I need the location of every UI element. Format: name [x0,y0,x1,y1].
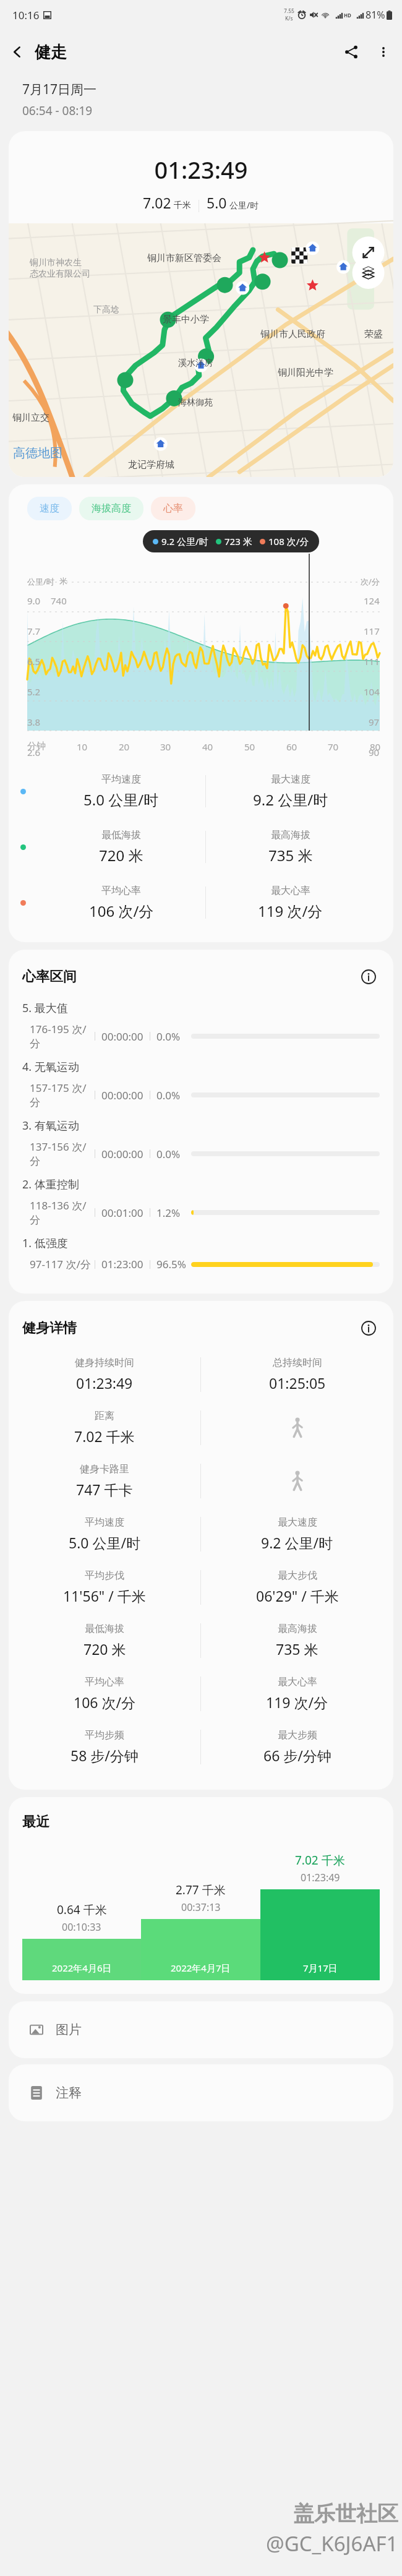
staticText: 平均步伐 [85,1569,124,1582]
staticText: 2. 体重控制 [22,1177,79,1192]
staticText: 0.0% [156,1088,189,1102]
button[interactable]: 7.02 千米 [260,1844,380,1980]
staticText: 铜川立交 [12,412,49,424]
staticText: 6.5 [27,655,41,668]
button[interactable]: 2.77 千米 [141,1844,260,1980]
staticText: 740 [51,595,67,607]
staticText: 2.6 [27,746,41,758]
staticText: 111 [364,655,380,668]
staticText: 健走 [35,42,67,62]
staticText: 总持续时间 [273,1357,322,1369]
button[interactable]: 图片 [9,2001,393,2058]
staticText: 735 米 [276,1639,319,1659]
staticText: 7.02 千米 [295,1852,345,1868]
staticText: 最近 [22,1813,49,1831]
staticText: 最大心率 [271,885,310,897]
staticText: 海拔高度 [92,502,131,515]
staticText: 最高海拔 [278,1623,317,1635]
staticText: 平均速度 [85,1516,124,1529]
staticText: 7月17日 [303,1962,338,1974]
staticText: 00:00:00 [101,1088,150,1102]
staticText: 平均步频 [85,1729,124,1741]
staticText: 0.0% [156,1147,189,1161]
staticText: 最大心率 [278,1676,317,1688]
staticText: 图片 [56,2022,82,2038]
staticText: 90 [369,746,380,758]
staticText: 高德地图 [13,445,62,461]
staticText: 137-156 次/分 [30,1140,95,1168]
staticText: 距离 [95,1410,114,1422]
staticText: 106 次/分 [74,1693,136,1712]
staticText: 735 米 [268,845,313,865]
staticText: 2022年4月7日 [171,1962,231,1974]
staticText: 平均速度 [101,773,141,786]
staticText: 0.0% [156,1029,189,1044]
staticText: 80 [370,741,381,753]
button[interactable]: Information about 健身详情 [357,1317,380,1339]
staticText: 97 [369,716,380,728]
staticText: 00:37:13 [181,1900,221,1914]
button[interactable]: Back [0,35,35,69]
button[interactable]: 海拔高度 [79,497,143,520]
staticText: 1.2% [156,1206,189,1220]
staticText: 01:23:49 [9,153,393,186]
staticText: 次/分 [361,576,380,587]
staticText: 健身持续时间 [75,1357,134,1369]
staticText: 106 次/分 [89,901,154,921]
staticText: 119 次/分 [258,901,323,921]
staticText: 铜川阳光中学 [278,367,333,379]
staticText: 0.64 千米 [57,1902,107,1918]
staticText: 58 步/分钟 [71,1746,139,1765]
staticText: 9.2 公里/时 [253,789,328,810]
staticText: 9.0 [27,595,41,607]
staticText: 01:25:05 [269,1373,326,1393]
staticText: 溪水洋房 [178,358,213,369]
staticText: 最低海拔 [101,829,141,841]
button[interactable]: 速度 [27,497,72,520]
staticText: 铜川市神农生 态农业有限公司 [30,257,90,279]
staticText: 平均心率 [101,885,141,897]
staticText: 盖乐世社区 [293,2501,398,2527]
button[interactable]: More options [367,36,400,68]
staticText: 最大步频 [278,1729,317,1741]
staticText: 01:23:49 [301,1871,340,1884]
staticText: 7.55 [284,7,294,15]
staticText: 最高海拔 [271,829,310,841]
staticText: 00:00:00 [101,1147,150,1161]
button[interactable]: 0.64 千米 [22,1844,141,1980]
staticText: 50 [244,741,255,753]
staticText: 米 [59,576,67,586]
staticText: 117 [364,625,380,637]
staticText: 747 千卡 [76,1480,133,1499]
staticText: 720 米 [99,845,143,865]
staticText: 118-136 次/分 [30,1198,95,1227]
button[interactable]: Information about 心率区间 [357,966,380,988]
staticText: 40 [202,741,213,753]
staticText: 60 [286,741,297,753]
button[interactable]: Share [335,36,367,68]
staticText: 3. 有氧运动 [22,1118,79,1133]
staticText: 最大步伐 [278,1569,317,1582]
staticText: 速度 [40,502,59,515]
staticText: 108 次/分 [268,535,309,547]
staticText: 5.0 公里/时 [69,1533,141,1552]
button[interactable]: 心率 [151,497,195,520]
staticText: 最大速度 [271,773,310,786]
staticText: 景丰中小学 [163,314,209,325]
staticText: 公里/时 [27,576,54,587]
staticText: 海林御苑 [178,397,213,408]
staticText: 06'29" / 千米 [256,1586,339,1605]
staticText: 最大速度 [278,1516,317,1529]
staticText: 千米 [174,200,191,211]
button[interactable]: 注释 [9,2064,393,2121]
staticText: 5.0 [207,193,227,212]
staticText: 723 米 [225,535,252,547]
staticText: 124 [364,595,380,607]
staticText: 01:23:00 [101,1257,150,1271]
staticText: 4. 无氧运动 [22,1059,79,1075]
staticText: 7月17日周一 [22,80,97,98]
staticText: 9.2 公里/时 [261,1533,333,1552]
staticText: 5.2 [27,685,41,698]
staticText: 1. 低强度 [22,1235,68,1251]
staticText: 11'56" / 千米 [63,1586,146,1605]
